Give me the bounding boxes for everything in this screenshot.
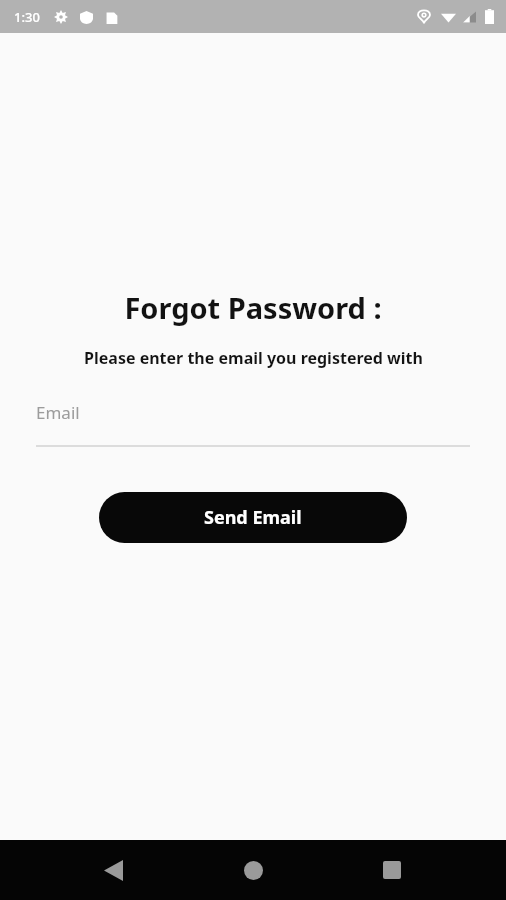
staticText: Email — [36, 401, 80, 424]
staticText: 1:30 — [14, 8, 40, 26]
button[interactable]: Email — [36, 401, 470, 447]
button[interactable]: Send Email — [99, 492, 407, 543]
staticText: Please enter the email you registered wi… — [84, 347, 423, 369]
staticText: Forgot Password : — [124, 288, 382, 327]
button[interactable]: Home — [231, 848, 275, 892]
staticText: Send Email — [204, 505, 302, 530]
button[interactable]: Recent apps — [370, 848, 414, 892]
button[interactable]: Back — [91, 848, 135, 892]
